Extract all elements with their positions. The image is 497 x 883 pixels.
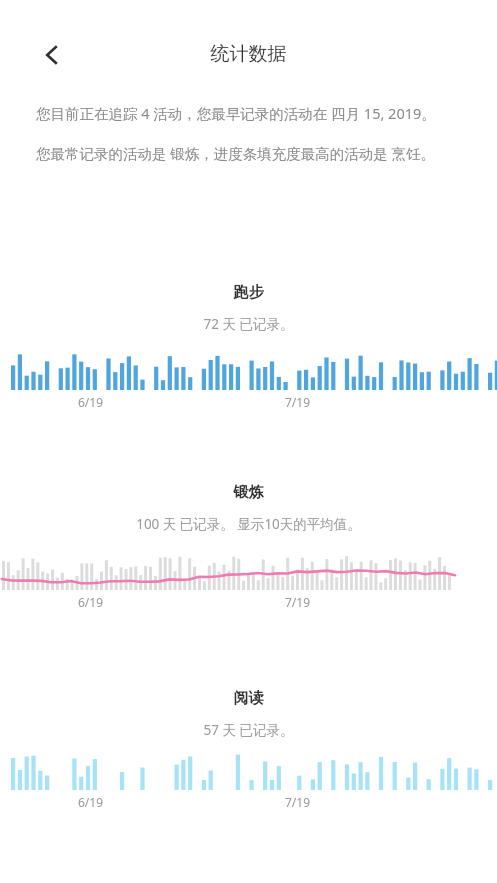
staticText: 6/19 bbox=[78, 394, 104, 410]
staticText: 锻炼 bbox=[0, 483, 497, 502]
staticText: 57 天 已记录。 bbox=[0, 721, 497, 739]
staticText: 72 天 已记录。 bbox=[0, 315, 497, 333]
staticText: 6/19 bbox=[78, 594, 104, 610]
staticText: 您最常记录的活动是 锻炼，进度条填充度最高的活动是 烹饪。 bbox=[36, 143, 436, 163]
staticText: 100 天 已记录。 显示10天的平均值。 bbox=[0, 515, 497, 533]
staticText: 7/19 bbox=[285, 794, 311, 810]
staticText: 6/19 bbox=[78, 794, 104, 810]
staticText: 统计数据 bbox=[0, 42, 497, 66]
staticText: 7/19 bbox=[285, 394, 311, 410]
staticText: 您目前正在追踪 4 活动，您最早记录的活动在 四月 15, 2019。 bbox=[36, 103, 436, 123]
staticText: 阅读 bbox=[0, 689, 497, 708]
staticText: 跑步 bbox=[0, 283, 497, 302]
staticText: 7/19 bbox=[285, 594, 311, 610]
button[interactable]: Back bbox=[30, 33, 74, 77]
